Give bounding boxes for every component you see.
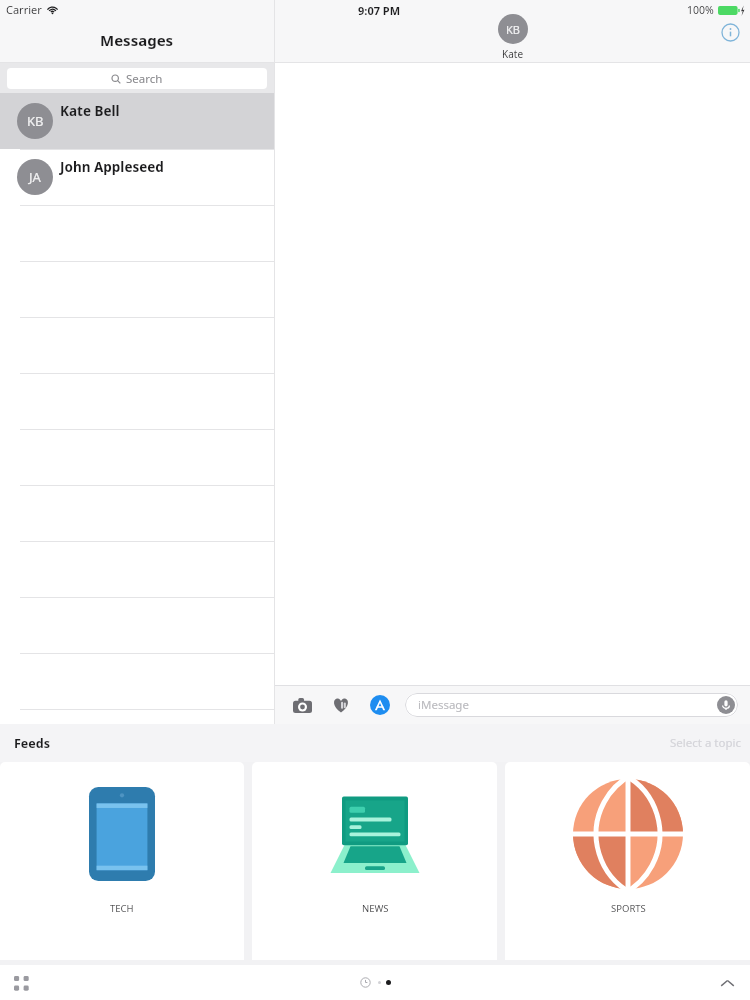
button[interactable]: SPORTS bbox=[505, 762, 750, 960]
staticText: NEWS bbox=[362, 902, 389, 915]
button[interactable]: App grid bbox=[8, 970, 34, 996]
button[interactable]: KB bbox=[0, 93, 274, 149]
staticText: 100% bbox=[687, 3, 714, 17]
staticText: iMessage bbox=[418, 697, 469, 713]
button[interactable]: App Store bbox=[366, 691, 394, 719]
staticText: Carrier bbox=[6, 2, 42, 17]
button[interactable]: Dictate bbox=[716, 695, 736, 715]
staticText: Kate bbox=[502, 47, 524, 61]
staticText: TECH bbox=[110, 902, 134, 915]
button[interactable]: iMessage bbox=[405, 693, 738, 717]
staticText: JA bbox=[29, 168, 41, 186]
staticText: SPORTS bbox=[611, 902, 646, 915]
staticText: Search bbox=[126, 71, 163, 87]
button[interactable]: TECH bbox=[0, 762, 244, 960]
button[interactable]: JA bbox=[0, 149, 274, 205]
button[interactable]: Select a topic bbox=[670, 735, 742, 751]
button[interactable]: KB bbox=[498, 14, 528, 61]
button[interactable]: Details bbox=[719, 21, 741, 43]
staticText: KB bbox=[27, 112, 44, 130]
button[interactable]: Show dock bbox=[714, 970, 740, 996]
button[interactable]: Digital Touch bbox=[327, 691, 355, 719]
staticText: Kate Bell bbox=[60, 102, 120, 120]
staticText: 9:07 PM bbox=[358, 3, 401, 18]
staticText: John Appleseed bbox=[60, 158, 164, 176]
button[interactable]: Search bbox=[7, 68, 267, 89]
staticText: Feeds bbox=[14, 735, 50, 752]
button[interactable]: Camera bbox=[288, 691, 316, 719]
staticText: Select a topic bbox=[670, 735, 742, 751]
button[interactable]: NEWS bbox=[252, 762, 497, 960]
staticText: KB bbox=[506, 22, 520, 37]
staticText: Messages bbox=[100, 30, 174, 50]
